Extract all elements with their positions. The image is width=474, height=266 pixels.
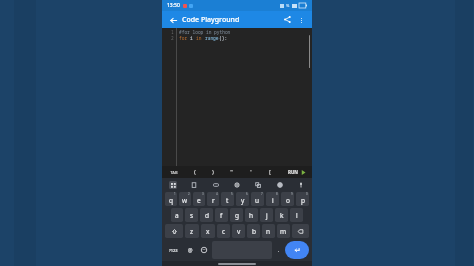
- staticText: q: [169, 196, 173, 205]
- button[interactable]: a: [171, 208, 183, 222]
- staticText: d: [205, 211, 209, 220]
- button[interactable]: Sticker: [275, 180, 284, 189]
- button[interactable]: Settings: [232, 180, 241, 189]
- staticText: j: [266, 211, 268, 220]
- button[interactable]: 1: [165, 192, 177, 206]
- button[interactable]: 9: [281, 192, 294, 206]
- staticText: r: [212, 196, 215, 205]
- button[interactable]: Period: [274, 241, 283, 259]
- staticText: n: [266, 227, 271, 236]
- staticText: h: [249, 211, 254, 220]
- button[interactable]: GIF: [211, 180, 220, 189]
- staticText: u: [255, 196, 260, 205]
- staticText: [: [269, 168, 271, 176]
- button[interactable]: k: [275, 208, 288, 222]
- staticText: .: [278, 247, 280, 254]
- button[interactable]: b: [247, 224, 260, 238]
- staticText: w: [182, 196, 188, 205]
- staticText: 0: [306, 192, 308, 196]
- button[interactable]: ?123: [165, 241, 182, 259]
- staticText: %: [286, 3, 290, 8]
- button[interactable]: ': [248, 167, 254, 177]
- button[interactable]: More options: [295, 14, 307, 26]
- staticText: 2: [188, 192, 190, 196]
- staticText: a: [175, 211, 179, 220]
- button[interactable]: 2: [179, 192, 191, 206]
- staticText: 1: [174, 192, 176, 196]
- staticText: m: [280, 227, 287, 236]
- button[interactable]: ": [228, 167, 235, 177]
- button[interactable]: 6: [236, 192, 249, 206]
- button[interactable]: l: [290, 208, 303, 222]
- button[interactable]: m: [277, 224, 290, 238]
- button[interactable]: f: [215, 208, 228, 222]
- staticText: o: [286, 196, 290, 205]
- button[interactable]: Share: [281, 13, 294, 26]
- staticText: p: [301, 196, 305, 205]
- staticText: #for loop in python: [179, 29, 231, 35]
- staticText: ": [230, 168, 233, 176]
- button[interactable]: (: [192, 167, 198, 177]
- button[interactable]: 3: [193, 192, 205, 206]
- staticText: y: [241, 196, 245, 205]
- staticText: ?123: [169, 248, 178, 253]
- staticText: s: [190, 211, 194, 220]
- button[interactable]: x: [201, 224, 215, 238]
- button[interactable]: c: [217, 224, 230, 238]
- staticText: i: [190, 35, 196, 41]
- button[interactable]: 7: [251, 192, 264, 206]
- button[interactable]: Translate: [253, 180, 262, 189]
- staticText: 3: [202, 192, 204, 196]
- button[interactable]: Clipboard: [189, 180, 198, 189]
- staticText: ():: [219, 35, 228, 41]
- staticText: z: [190, 227, 194, 236]
- button[interactable]: n: [262, 224, 275, 238]
- button[interactable]: Back: [167, 14, 179, 26]
- staticText: for: [179, 35, 190, 41]
- button[interactable]: Backspace: [292, 224, 309, 238]
- button[interactable]: 8: [266, 192, 279, 206]
- staticText: RUN: [288, 169, 299, 175]
- button[interactable]: Enter: [285, 241, 309, 259]
- staticText: 1: [171, 29, 174, 35]
- button[interactable]: TAB: [168, 169, 180, 176]
- button[interactable]: v: [232, 224, 245, 238]
- staticText: v: [237, 227, 241, 236]
- button[interactable]: ): [210, 167, 216, 177]
- button[interactable]: Symbols: [184, 241, 196, 259]
- staticText: k: [280, 211, 284, 220]
- button[interactable]: g: [230, 208, 243, 222]
- staticText: 6: [246, 192, 248, 196]
- button[interactable]: Keyboard apps: [169, 181, 177, 189]
- button[interactable]: Voice input: [296, 180, 305, 189]
- staticText: 9: [291, 192, 293, 196]
- staticText: @: [188, 247, 193, 254]
- button[interactable]: s: [185, 208, 198, 222]
- button[interactable]: 4: [207, 192, 219, 206]
- button[interactable]: RUN: [286, 169, 308, 175]
- button[interactable]: 0: [296, 192, 309, 206]
- staticText: 7: [261, 192, 263, 196]
- staticText: ': [250, 168, 252, 176]
- button[interactable]: j: [260, 208, 273, 222]
- button[interactable]: d: [200, 208, 213, 222]
- staticText: c: [222, 227, 226, 236]
- staticText: TAB: [170, 170, 178, 175]
- staticText: Code Playground: [182, 15, 240, 25]
- button[interactable]: Emoji: [198, 241, 210, 259]
- staticText: i: [272, 196, 274, 205]
- staticText: ): [212, 168, 214, 176]
- staticText: 4: [216, 192, 218, 196]
- staticText: 2: [171, 35, 174, 41]
- staticText: in: [196, 35, 205, 41]
- staticText: b: [252, 227, 256, 236]
- button[interactable]: Shift: [165, 224, 183, 238]
- staticText: 13:50: [167, 2, 180, 9]
- button[interactable]: 5: [221, 192, 234, 206]
- button[interactable]: [: [267, 167, 273, 177]
- button[interactable]: z: [185, 224, 199, 238]
- staticText: 5: [231, 192, 233, 196]
- button[interactable]: h: [245, 208, 258, 222]
- staticText: (: [194, 168, 196, 176]
